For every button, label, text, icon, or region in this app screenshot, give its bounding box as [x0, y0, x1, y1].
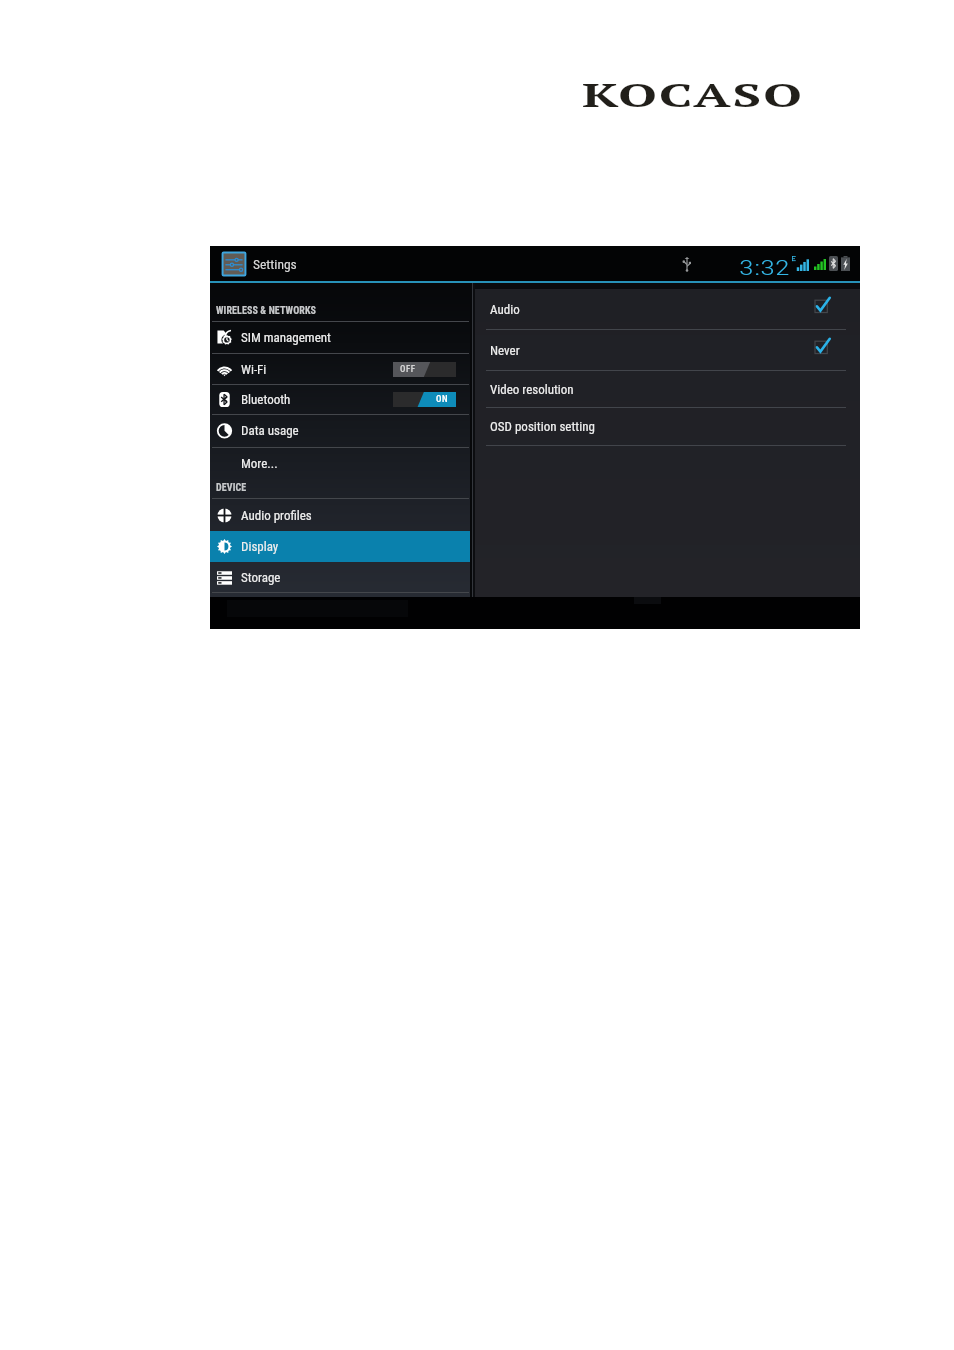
staticText: WIRELESS & NETWORKS [216, 305, 317, 317]
staticText: More... [241, 456, 278, 471]
button[interactable]: More... [210, 448, 470, 479]
button[interactable]: Display [210, 531, 470, 561]
staticText: Audio profiles [241, 508, 312, 523]
button[interactable]: Audio [475, 289, 860, 329]
staticText: OFF [400, 364, 416, 375]
other: Checked [815, 297, 830, 313]
staticText: ON [436, 394, 448, 405]
button[interactable]: Video resolution [475, 371, 860, 407]
staticText: KOCASO [582, 73, 804, 117]
staticText: Video resolution [490, 382, 574, 397]
button[interactable]: Settings [210, 246, 860, 281]
staticText: SIM management [241, 330, 331, 345]
button[interactable]: Never [475, 330, 860, 370]
staticText: Audio [490, 302, 520, 317]
button[interactable]: Turn off [393, 392, 456, 407]
button[interactable]: Bluetooth [210, 385, 470, 414]
button[interactable]: Storage [210, 562, 470, 592]
staticText: Storage [241, 570, 281, 585]
button[interactable]: SIM management [210, 322, 470, 353]
button[interactable]: Turn on [393, 362, 456, 377]
other: Checked [815, 338, 830, 354]
staticText: Never [490, 343, 520, 358]
button[interactable]: OSD position setting [475, 408, 860, 445]
button[interactable]: Wi-Fi [210, 355, 470, 384]
staticText: 3:32 [739, 255, 791, 279]
other: USB connected [682, 257, 692, 272]
button[interactable]: Audio profiles [210, 499, 470, 531]
staticText: OSD position setting [490, 419, 595, 434]
staticText: DEVICE [216, 482, 247, 494]
staticText: Wi-Fi [241, 362, 267, 377]
staticText: Bluetooth [241, 392, 291, 407]
staticText: Settings [253, 256, 297, 272]
staticText: Display [241, 539, 279, 554]
staticText: Data usage [241, 423, 299, 438]
button[interactable]: Data usage [210, 414, 470, 447]
